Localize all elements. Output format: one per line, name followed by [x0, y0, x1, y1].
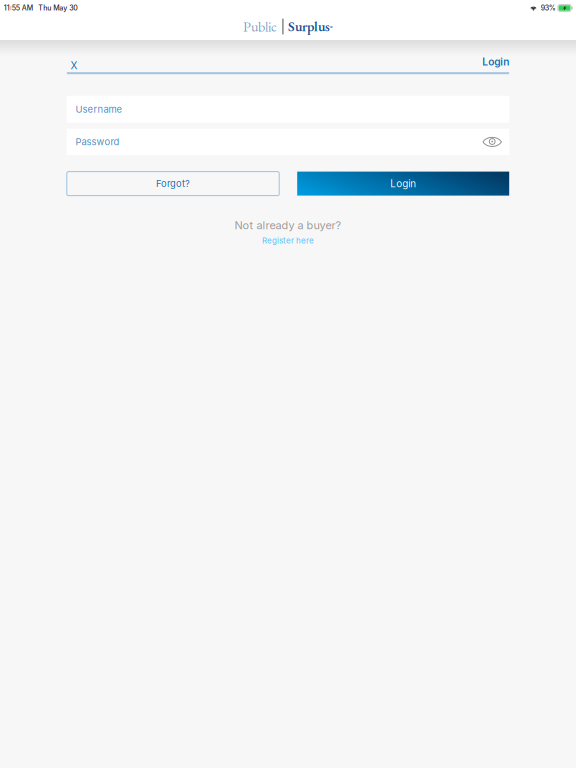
button[interactable]: Forgot? — [67, 172, 279, 196]
staticText: Username — [75, 103, 122, 115]
staticText: Password — [75, 136, 119, 148]
staticText: X — [70, 59, 77, 72]
staticText: Not already a buyer? — [234, 219, 341, 232]
button[interactable]: Register here — [262, 236, 314, 245]
staticText: 93% — [541, 4, 556, 12]
staticText: Register here — [262, 236, 314, 245]
staticText: Thu May 30 — [38, 4, 78, 12]
staticText: Login — [390, 178, 416, 189]
staticText: 11:55 AM — [4, 4, 33, 12]
button[interactable]: Show password — [478, 129, 506, 155]
staticText: Public — [243, 17, 277, 36]
staticText: Surplus — [288, 17, 330, 35]
button[interactable]: Close — [67, 51, 82, 73]
button[interactable]: Login — [482, 54, 509, 69]
staticText: Forgot? — [156, 178, 190, 189]
staticText: Login — [482, 56, 509, 68]
button[interactable]: Login — [297, 172, 509, 196]
